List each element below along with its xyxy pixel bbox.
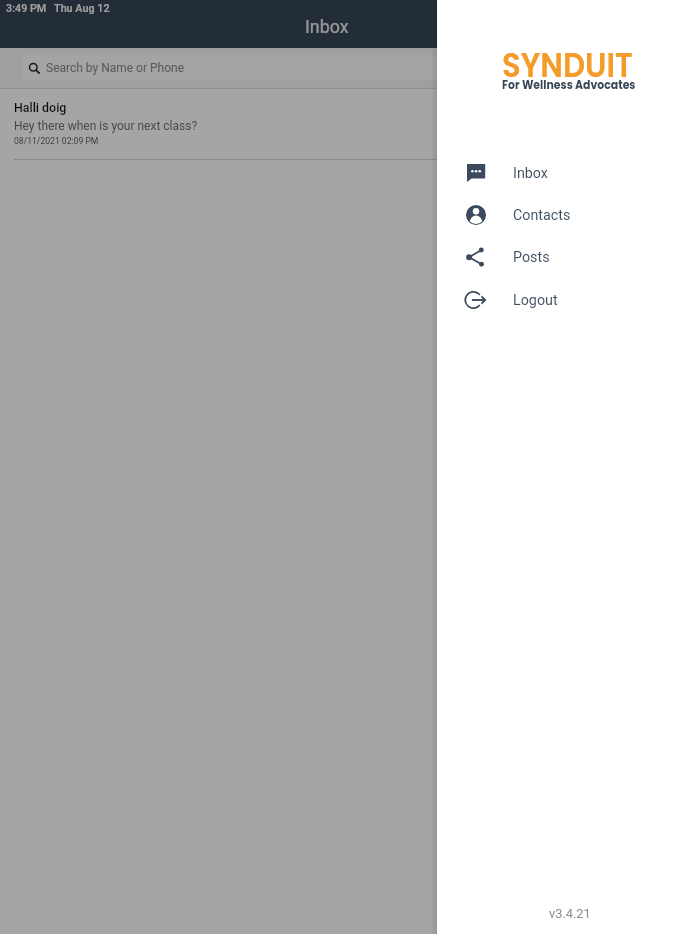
button[interactable]: Posts: [437, 236, 700, 278]
staticText: Inbox: [513, 165, 548, 182]
staticText: Inbox: [305, 16, 349, 37]
staticText: Contacts: [513, 207, 571, 224]
button[interactable]: Halli doig: [0, 89, 700, 159]
other: Search: [25, 59, 42, 76]
button[interactable]: Inbox: [437, 152, 700, 194]
staticText: SYNDUIT: [502, 41, 633, 89]
button[interactable]: Contacts: [437, 194, 700, 236]
staticText: For Wellness Advocates: [502, 76, 636, 93]
staticText: Halli doig: [14, 100, 67, 115]
staticText: Hey there when is your next class?: [14, 119, 198, 133]
staticText: Posts: [513, 249, 550, 266]
staticText: Logout: [513, 292, 558, 309]
button[interactable]: Search: [21, 55, 678, 80]
staticText: 3:49 PM Thu Aug 12: [6, 2, 110, 15]
staticText: Search by Name or Phone: [46, 61, 185, 75]
button[interactable]: Logout: [437, 279, 700, 321]
staticText: v3.4.21: [549, 906, 591, 921]
staticText: 08/11/2021 02:09 PM: [14, 136, 99, 146]
